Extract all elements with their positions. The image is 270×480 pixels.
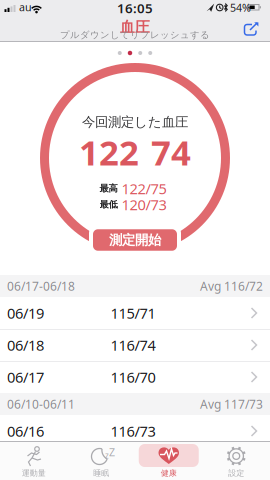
staticText: 睡眠 [93,468,109,478]
staticText: 最高 [99,183,117,194]
staticText: 16:05 [117,0,153,17]
button[interactable]: 設定 [202,441,270,480]
button[interactable]: 健康 [135,441,202,480]
staticText: 122/75 [121,179,166,198]
button[interactable]: 06/18 [0,329,270,361]
staticText: 06/16 [7,421,44,441]
staticText: z [105,450,109,461]
staticText: 測定開始 [109,232,161,248]
staticText: 116/73 [110,421,155,441]
staticText: 血圧 [120,18,150,36]
staticText: 06/17 [7,367,44,387]
staticText: 74 [151,129,191,175]
staticText: Avg 116/72 [200,278,263,294]
staticText: 115/71 [110,303,155,323]
staticText: 122 [79,129,139,175]
button[interactable]: 06/17 [0,361,270,393]
staticText: 今回測定した血圧 [82,114,188,130]
staticText: 06/17-06/18 [7,278,75,294]
staticText: 54% [230,0,251,15]
staticText: 06/10-06/11 [7,396,75,412]
staticText: au [19,0,32,14]
staticText: 最低 [99,199,117,210]
staticText: 設定 [228,468,244,478]
staticText: 116/74 [110,335,155,355]
staticText: 06/18 [7,335,44,355]
staticText: Avg 117/73 [200,396,263,412]
staticText: 運動量 [22,468,46,478]
staticText: Z [109,445,115,459]
button[interactable]: Share [0,0,270,44]
button[interactable]: 測定開始 [89,226,181,254]
button[interactable]: 06/19 [0,297,270,329]
button[interactable]: 運動量 [0,441,67,480]
button[interactable]: 睡眠 [67,441,135,480]
staticText: プルダウンしてリフレッシュする [60,29,210,41]
staticText: 120/73 [121,195,166,214]
staticText: 116/70 [110,367,155,387]
staticText: 06/19 [7,303,44,323]
button[interactable]: 06/16 [0,415,270,447]
staticText: 健康 [161,468,177,478]
